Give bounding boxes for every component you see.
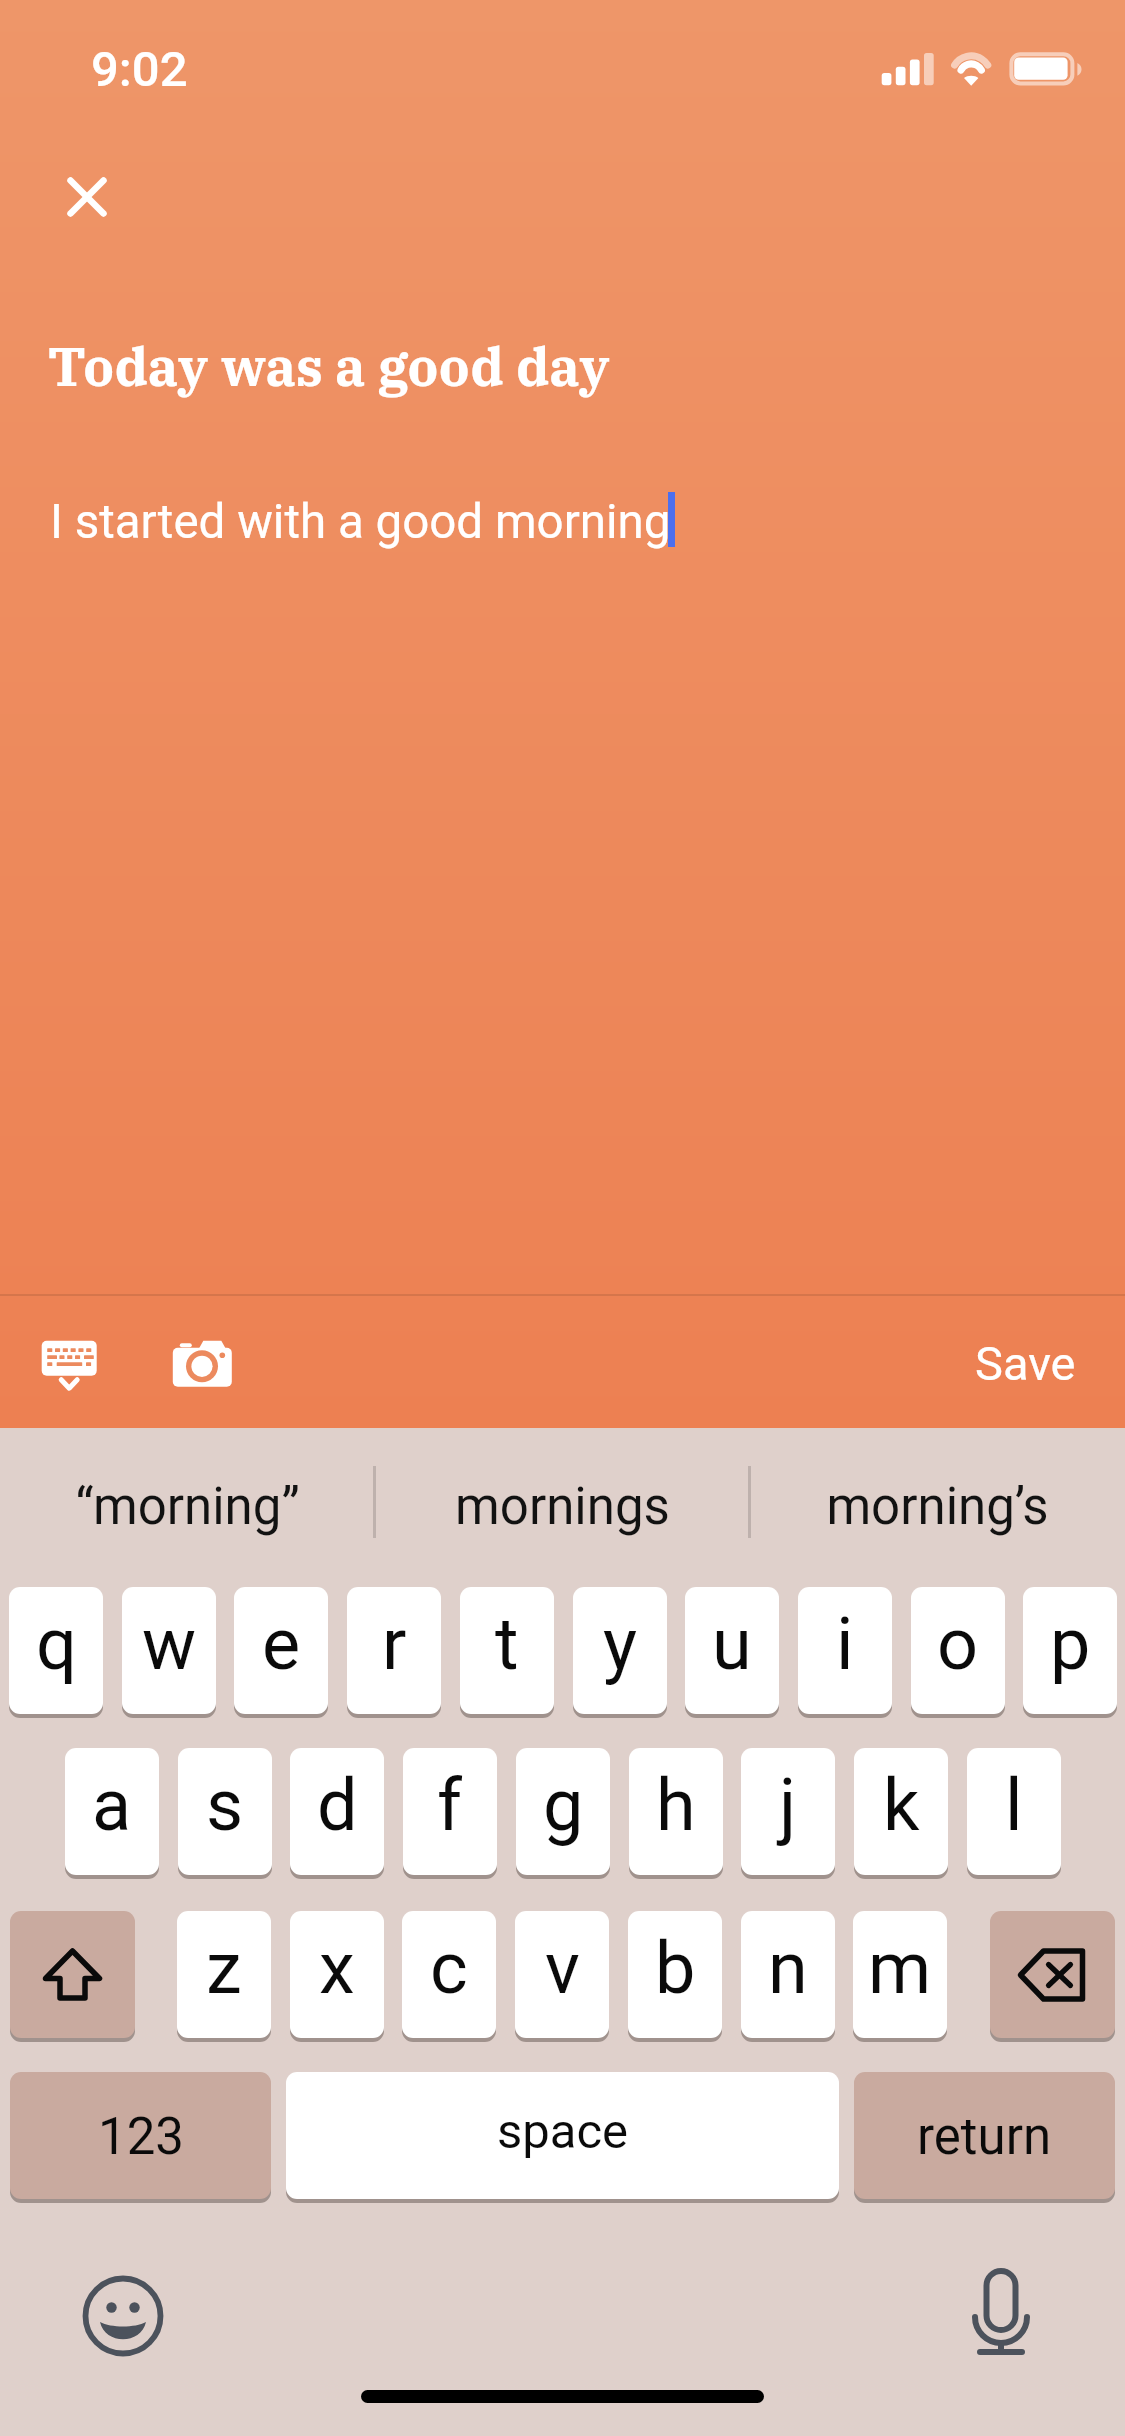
staticText: p [1050, 1602, 1091, 1686]
button[interactable]: b [628, 1911, 722, 2043]
button[interactable]: z [177, 1911, 271, 2043]
staticText: I started with a good morning [50, 494, 671, 550]
staticText: h [656, 1763, 696, 1847]
staticText: e [262, 1602, 301, 1686]
button[interactable]: I started with a good morning [50, 494, 1077, 1274]
button[interactable]: s [178, 1748, 272, 1880]
staticText: “morning” [75, 1477, 300, 1537]
button[interactable]: e [234, 1587, 328, 1719]
staticText: k [883, 1763, 920, 1847]
staticText: u [712, 1602, 752, 1686]
button[interactable]: u [685, 1587, 779, 1719]
staticText: l [1005, 1763, 1023, 1847]
button[interactable]: mornings [376, 1454, 748, 1556]
staticText: y [603, 1602, 638, 1686]
button[interactable]: f [403, 1748, 497, 1880]
staticText: morning’s [826, 1477, 1049, 1537]
staticText: v [545, 1926, 580, 2010]
button[interactable]: l [967, 1748, 1061, 1880]
staticText: Today was a good day [48, 332, 610, 401]
staticText: Save [975, 1336, 1076, 1391]
button[interactable]: 123 [10, 2072, 271, 2204]
staticText: x [319, 1926, 355, 2010]
button[interactable]: c [402, 1911, 496, 2043]
button[interactable]: Backspace [990, 1911, 1115, 2043]
staticText: a [92, 1763, 132, 1847]
button[interactable]: j [741, 1748, 835, 1880]
button[interactable]: Hide keyboard [22, 1326, 116, 1406]
button[interactable]: Dictation [956, 2266, 1046, 2362]
button[interactable]: m [853, 1911, 947, 2043]
staticText: w [142, 1602, 197, 1686]
button[interactable]: q [9, 1587, 103, 1719]
staticText: return [917, 2107, 1052, 2167]
button[interactable]: y [573, 1587, 667, 1719]
staticText: t [495, 1602, 519, 1686]
button[interactable]: t [460, 1587, 554, 1719]
staticText: q [36, 1602, 77, 1686]
staticText: b [655, 1926, 696, 2010]
button[interactable]: Emoji keyboard [78, 2271, 168, 2361]
button[interactable]: h [629, 1748, 723, 1880]
button[interactable]: return [854, 2072, 1115, 2204]
staticText: r [382, 1602, 407, 1686]
button[interactable]: o [911, 1587, 1005, 1719]
staticText: n [768, 1926, 808, 2010]
button[interactable]: space [286, 2072, 839, 2204]
staticText: c [430, 1926, 468, 2010]
staticText: g [543, 1763, 584, 1847]
button[interactable]: r [347, 1587, 441, 1719]
staticText: i [836, 1602, 854, 1686]
button[interactable]: w [122, 1587, 216, 1719]
button[interactable]: Camera [160, 1326, 246, 1406]
staticText: 9:02 [91, 41, 188, 98]
button[interactable]: a [65, 1748, 159, 1880]
button[interactable]: n [741, 1911, 835, 2043]
button[interactable]: k [854, 1748, 948, 1880]
staticText: 123 [98, 2107, 184, 2167]
button[interactable]: Shift [10, 1911, 135, 2043]
button[interactable]: Close [42, 152, 132, 242]
staticText: d [317, 1763, 358, 1847]
staticText: space [497, 2103, 629, 2160]
button[interactable]: morning’s [751, 1454, 1123, 1556]
button[interactable]: i [798, 1587, 892, 1719]
button[interactable]: g [516, 1748, 610, 1880]
button[interactable]: Save [949, 1318, 1101, 1408]
staticText: f [437, 1763, 463, 1847]
button[interactable]: d [290, 1748, 384, 1880]
staticText: m [868, 1926, 932, 2010]
staticText: j [779, 1763, 797, 1847]
button[interactable]: p [1023, 1587, 1117, 1719]
staticText: s [206, 1763, 244, 1847]
staticText: mornings [455, 1477, 670, 1537]
button[interactable]: x [290, 1911, 384, 2043]
button[interactable]: Today was a good day [48, 332, 1077, 406]
button[interactable]: “morning” [1, 1454, 373, 1556]
staticText: o [937, 1602, 979, 1686]
staticText: z [206, 1926, 242, 2010]
button[interactable]: v [515, 1911, 609, 2043]
